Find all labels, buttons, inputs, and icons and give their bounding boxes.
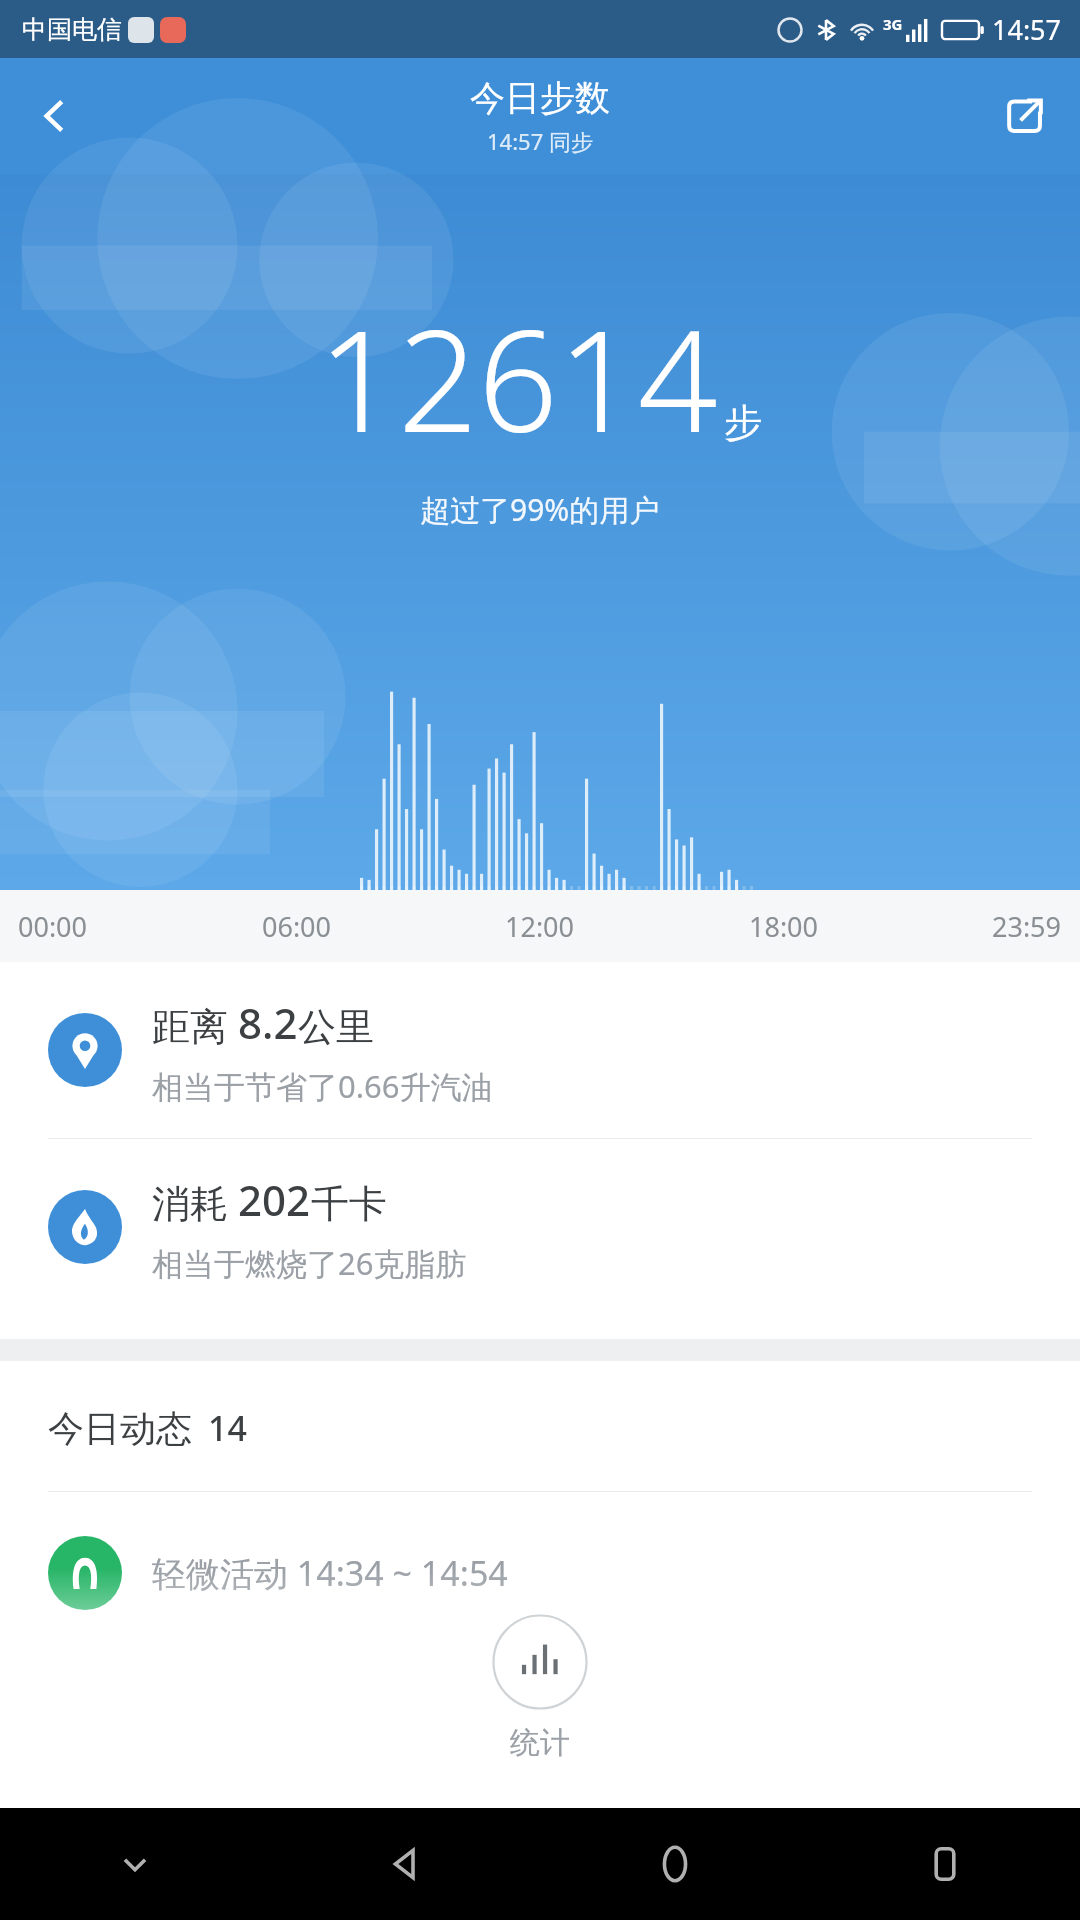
staticText: 今日动态 (48, 1406, 192, 1451)
button[interactable]: 统计 (484, 1606, 596, 1770)
staticText: 消耗 (152, 1176, 238, 1228)
staticText: 23:59 (992, 908, 1062, 945)
staticText: 距离 (152, 999, 238, 1051)
staticText: 步 (724, 399, 762, 447)
staticText: 18:00 (749, 908, 819, 945)
staticText: 14 (208, 1405, 247, 1451)
staticText: 公里 (298, 1003, 374, 1051)
staticText: 3G (883, 14, 903, 34)
staticText: 12614 (318, 282, 718, 473)
button[interactable]: 轻微活动 14:34 ~ 14:54 (0, 1536, 1080, 1610)
staticText: 今日步数 (470, 76, 610, 120)
button[interactable]: Back (0, 58, 110, 174)
staticText: 12:00 (505, 908, 575, 945)
staticText: 相当于节省了0.66升汽油 (152, 1065, 493, 1107)
button[interactable]: Hide keyboard (0, 1808, 270, 1920)
staticText: 8.2 (238, 994, 298, 1051)
staticText: 相当于燃烧了26克脂肪 (152, 1242, 467, 1284)
staticText: 14:57 (992, 11, 1062, 48)
staticText: 中国电信 (22, 14, 122, 45)
button[interactable]: 消耗 (0, 1139, 1080, 1315)
staticText: 千卡 (311, 1180, 387, 1228)
button[interactable]: 距离 (0, 962, 1080, 1138)
staticText: 14:57 同步 (487, 126, 593, 156)
staticText: 统计 (510, 1724, 570, 1762)
staticText: 06:00 (262, 908, 332, 945)
staticText: 轻微活动 14:34 ~ 14:54 (152, 1550, 508, 1596)
button[interactable]: Share (970, 58, 1080, 174)
button[interactable]: Recent apps (810, 1808, 1080, 1920)
staticText: 202 (238, 1171, 311, 1228)
staticText: 超过了99%的用户 (420, 489, 660, 530)
button[interactable]: Back (270, 1808, 540, 1920)
staticText: 00:00 (18, 908, 88, 945)
button[interactable]: Home (540, 1808, 810, 1920)
